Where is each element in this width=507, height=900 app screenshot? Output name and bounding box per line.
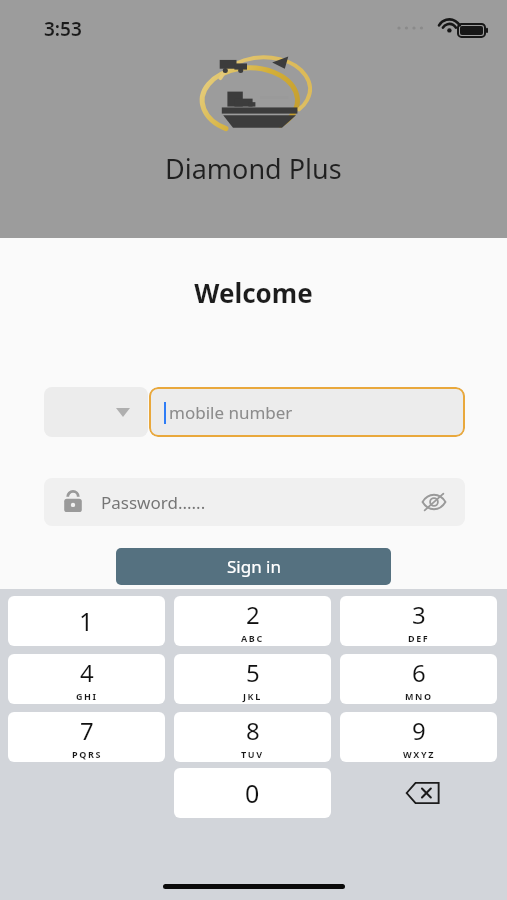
staticText: 3:53 — [44, 16, 82, 42]
staticText: 7 — [80, 714, 94, 747]
staticText: JKL — [243, 690, 262, 702]
button[interactable]: 8 — [174, 712, 331, 762]
button[interactable]: 6 — [340, 654, 497, 704]
staticText: WXYZ — [403, 748, 435, 760]
button[interactable]: Password...... — [44, 478, 465, 526]
staticText: 0 — [245, 776, 260, 810]
button[interactable]: 7 — [8, 712, 165, 762]
button[interactable]: 2 — [174, 596, 331, 646]
staticText: MNO — [405, 690, 433, 702]
staticText: Sign in — [227, 555, 281, 578]
staticText: TUV — [241, 748, 264, 760]
button[interactable]: 5 — [174, 654, 331, 704]
staticText: 1 — [79, 604, 94, 638]
button[interactable]: 3 — [340, 596, 497, 646]
staticText: 8 — [246, 714, 260, 747]
staticText: 5 — [246, 656, 260, 689]
button[interactable]: 4 — [8, 654, 165, 704]
button[interactable]: Show password — [417, 485, 451, 519]
staticText: mobile number — [169, 401, 293, 424]
staticText: PQRS — [72, 748, 102, 760]
button[interactable]: 0 — [174, 768, 331, 818]
staticText: Welcome — [194, 275, 313, 310]
staticText: 4 — [80, 656, 94, 689]
staticText: Diamond Plus — [165, 150, 342, 187]
button[interactable]: 9 — [340, 712, 497, 762]
staticText: Password...... — [101, 491, 206, 514]
staticText: 9 — [412, 714, 426, 747]
staticText: GHI — [76, 690, 98, 702]
button[interactable]: Backspace — [340, 768, 506, 818]
staticText: DEF — [408, 632, 430, 644]
staticText: 6 — [412, 656, 426, 689]
button[interactable]: mobile number — [149, 387, 465, 437]
staticText: ABC — [241, 632, 264, 644]
button[interactable]: Select country code — [44, 387, 148, 437]
staticText: 3 — [412, 598, 426, 631]
button[interactable]: Sign in — [116, 548, 391, 585]
staticText: 2 — [246, 598, 260, 631]
button[interactable]: 1 — [8, 596, 165, 646]
